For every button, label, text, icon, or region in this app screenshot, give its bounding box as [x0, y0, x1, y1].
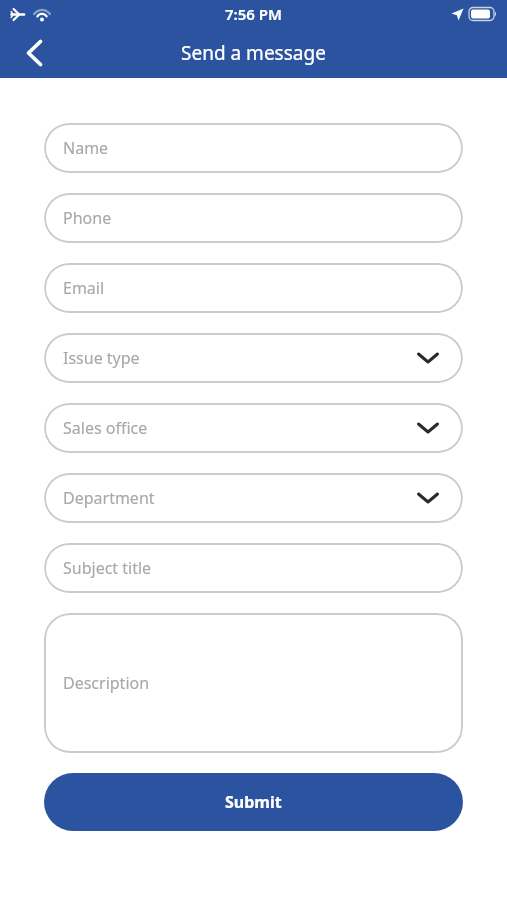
button[interactable]: Name	[44, 123, 463, 173]
staticText: Send a message	[181, 40, 326, 66]
staticText: Email	[63, 277, 105, 299]
button[interactable]: Subject title	[44, 543, 463, 593]
staticText: Department	[63, 487, 155, 509]
staticText: Issue type	[63, 347, 140, 369]
staticText: Subject title	[63, 557, 152, 579]
button[interactable]: Department	[44, 473, 463, 523]
button[interactable]: Issue type	[44, 333, 463, 383]
staticText: Submit	[225, 791, 282, 813]
staticText: Sales office	[63, 417, 148, 439]
button[interactable]: Phone	[44, 193, 463, 243]
button[interactable]: Sales office	[44, 403, 463, 453]
button[interactable]: Submit	[44, 773, 463, 831]
staticText: 7:56 PM	[225, 4, 282, 24]
button[interactable]	[20, 39, 48, 67]
button[interactable]: Email	[44, 263, 463, 313]
staticText: Phone	[63, 207, 112, 229]
staticText: Description	[63, 672, 150, 694]
staticText: Name	[63, 137, 109, 159]
button[interactable]: Description	[44, 613, 463, 753]
